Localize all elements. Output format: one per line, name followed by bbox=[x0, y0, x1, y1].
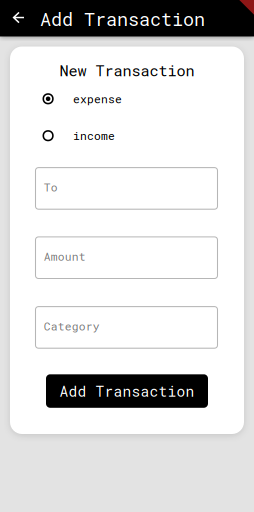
button[interactable]: Back bbox=[7, 5, 31, 29]
staticText: Category bbox=[44, 319, 100, 333]
staticText: Add Transaction bbox=[40, 6, 205, 31]
button[interactable]: income bbox=[42, 125, 192, 147]
staticText: New Transaction bbox=[59, 60, 194, 80]
button[interactable]: Add Transaction bbox=[46, 374, 208, 408]
staticText: Amount bbox=[44, 249, 86, 264]
staticText: To bbox=[44, 180, 58, 194]
staticText: Add Transaction bbox=[59, 381, 194, 401]
staticText: income bbox=[73, 128, 115, 143]
button[interactable]: expense bbox=[42, 88, 192, 110]
staticText: expense bbox=[73, 91, 122, 106]
